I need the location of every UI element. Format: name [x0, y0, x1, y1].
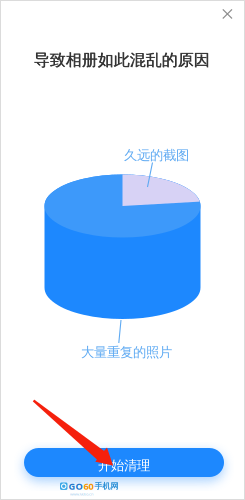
staticText: 手机网 — [94, 481, 118, 491]
button[interactable]: 开始清理 — [24, 448, 224, 477]
staticText: 导致相册如此混乱的原因 — [33, 50, 209, 70]
staticText: 导致相册如此混乱的原因 — [34, 50, 210, 70]
staticText: 久远的截图 — [124, 147, 189, 163]
staticText: 开始清理 — [98, 457, 150, 474]
staticText: 大量重复的照片 — [81, 344, 172, 360]
staticText: GO — [68, 480, 82, 492]
staticText: 60 — [83, 480, 93, 492]
button[interactable]: Close — [0, 0, 245, 500]
staticText: www.60so.cn — [70, 491, 93, 497]
